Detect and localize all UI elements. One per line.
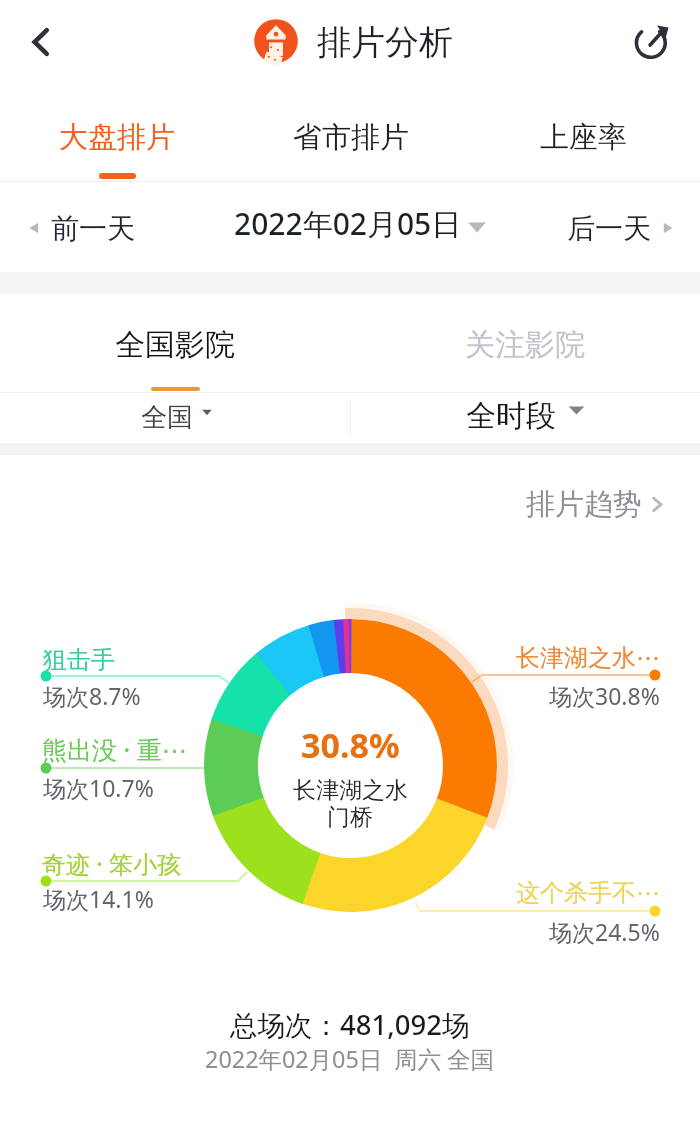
staticText: 全时段 — [466, 397, 556, 435]
staticText: 30.8% — [301, 722, 400, 768]
button[interactable]: 大盘排片 — [0, 88, 234, 182]
staticText: 场次30.8% — [549, 680, 660, 711]
staticText: 排片趋势 — [526, 486, 642, 523]
staticText: 后一天 — [567, 211, 651, 246]
staticText: 场次24.5% — [549, 916, 660, 947]
button[interactable]: 2022年02月05日 — [234, 191, 487, 255]
button[interactable]: 排片趋势 — [518, 482, 677, 526]
staticText: 排片分析 — [317, 21, 453, 64]
button[interactable]: 省市排片 — [234, 88, 467, 182]
staticText: 场次14.1% — [43, 883, 154, 914]
staticText: 关注影院 — [465, 326, 585, 364]
staticText: 全国影院 — [115, 326, 235, 364]
staticText: 全国 — [141, 401, 193, 434]
staticText: 奇迹 · 笨小孩 — [42, 847, 182, 880]
button[interactable]: Share — [627, 14, 679, 66]
staticText: 省市排片 — [293, 119, 409, 156]
button[interactable]: Back — [16, 17, 66, 67]
staticText: 总场次：481,092场 — [230, 1006, 470, 1044]
button[interactable]: 关注影院 — [350, 294, 700, 393]
staticText: 这个杀手不⋯ — [516, 878, 660, 908]
staticText: 长津湖之水⋯ — [516, 643, 660, 673]
staticText: 2022年02月05日 — [234, 203, 462, 244]
button[interactable]: 全国 — [141, 397, 212, 437]
staticText: 上座率 — [540, 119, 627, 156]
button[interactable]: 后一天 — [553, 196, 700, 260]
staticText: 场次10.7% — [43, 772, 154, 803]
button[interactable]: 全国影院 — [0, 294, 350, 393]
staticText: 大盘排片 — [59, 119, 175, 156]
staticText: 狙击手 — [43, 645, 115, 675]
staticText: 场次8.7% — [43, 680, 141, 711]
staticText: 2022年02月05日 周六 全国 — [205, 1043, 495, 1075]
staticText: 长津湖之水 — [293, 776, 408, 805]
button[interactable]: 前一天 — [0, 196, 149, 260]
button[interactable]: 上座率 — [467, 88, 700, 182]
staticText: 门桥 — [327, 803, 373, 832]
staticText: 熊出没 · 重⋯ — [42, 732, 187, 766]
staticText: 前一天 — [51, 211, 135, 246]
button[interactable]: 全时段 — [466, 396, 585, 436]
